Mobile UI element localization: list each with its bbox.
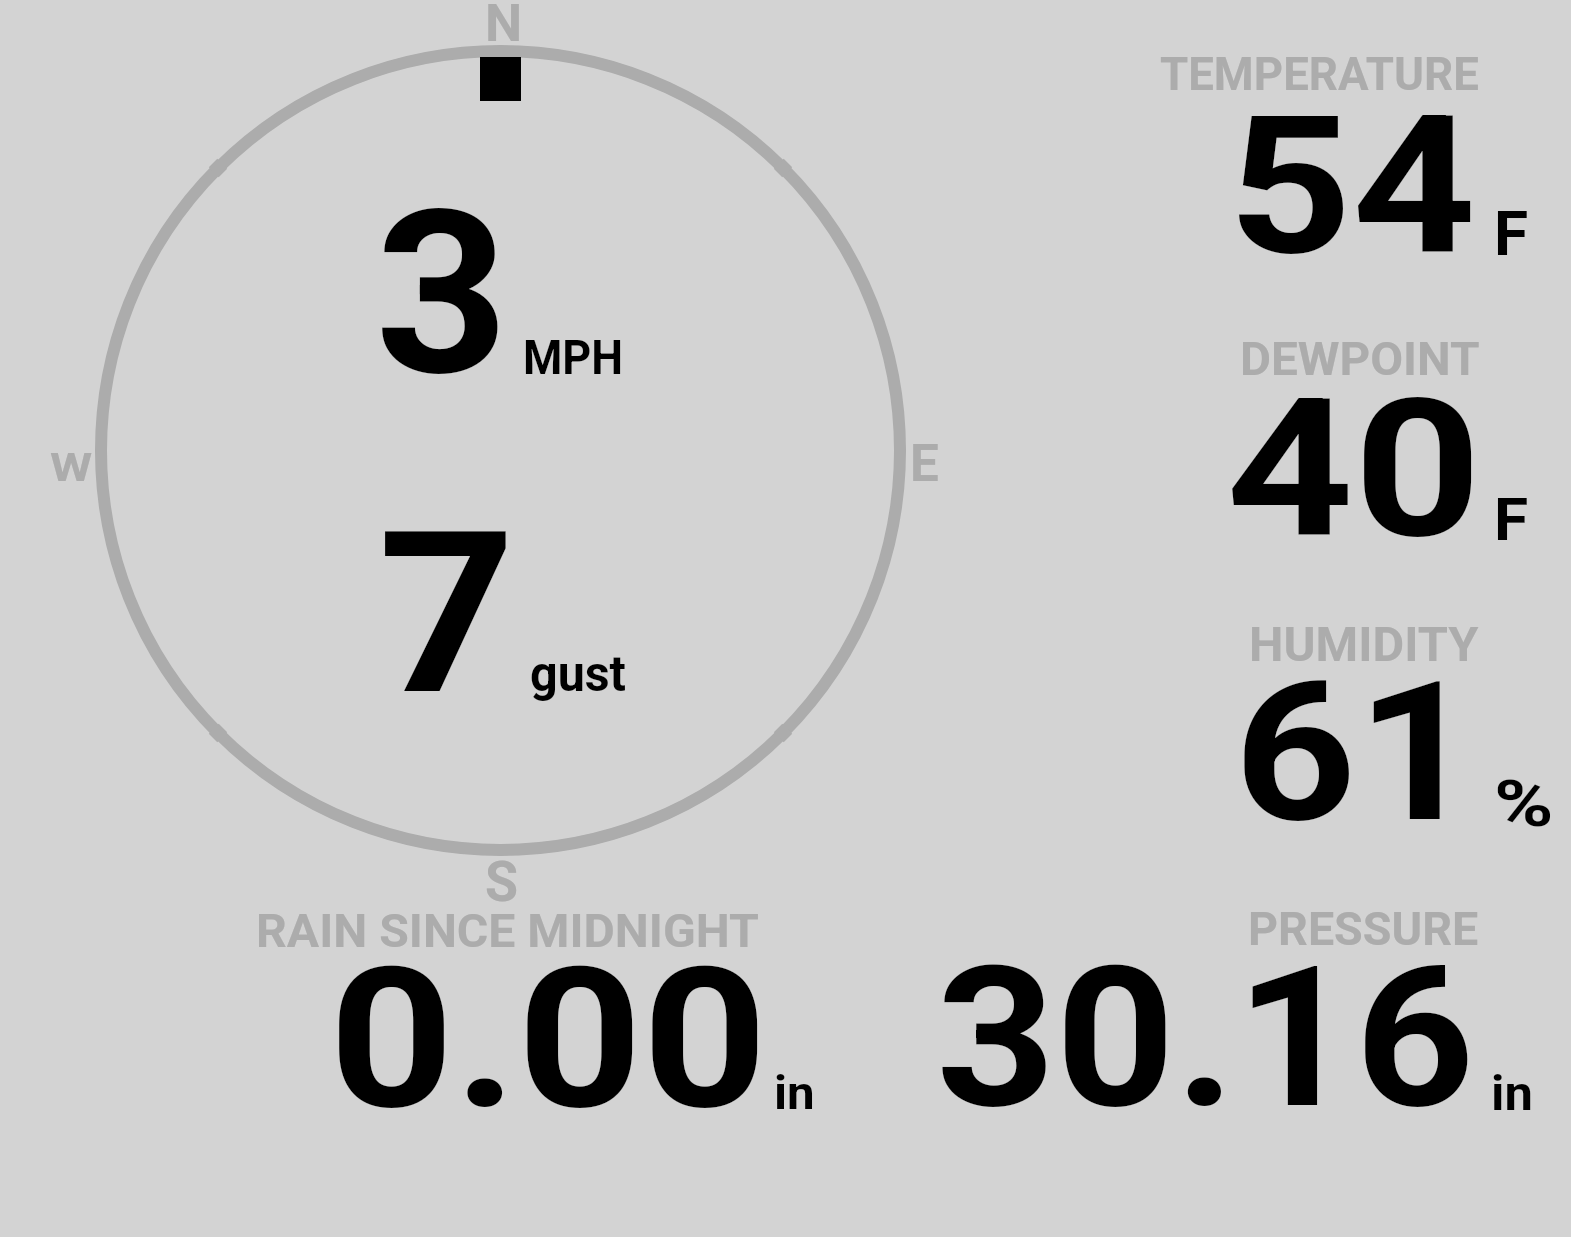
staticText: 0.00	[329, 926, 768, 1154]
staticText: in	[774, 1066, 815, 1120]
staticText: F	[1494, 199, 1529, 270]
staticText: PRESSURE	[1248, 902, 1479, 957]
staticText: 30.16	[936, 925, 1475, 1153]
staticText: W	[50, 445, 93, 491]
button[interactable]: Rain since midnight 0.00 inches	[240, 900, 800, 1125]
staticText: 61	[1234, 640, 1479, 866]
staticText: TEMPERATURE	[1160, 47, 1480, 102]
staticText: S	[485, 850, 518, 914]
staticText: DEWPOINT	[1240, 332, 1480, 387]
staticText: gust	[530, 645, 626, 703]
button[interactable]: Dewpoint 40 degrees Fahrenheit	[1150, 330, 1571, 560]
staticText: 3	[375, 162, 509, 427]
staticText: HUMIDITY	[1249, 617, 1479, 673]
staticText: RAIN SINCE MIDNIGHT	[256, 904, 759, 959]
staticText: in	[1491, 1066, 1534, 1121]
staticText: MPH	[523, 330, 623, 386]
staticText: 54	[1228, 75, 1477, 298]
staticText: E	[910, 433, 939, 493]
staticText: N	[485, 0, 522, 54]
staticText: F	[1494, 485, 1529, 554]
button[interactable]: Humidity 61 percent	[1150, 615, 1571, 845]
staticText: 7	[378, 483, 516, 745]
staticText: %	[1494, 766, 1554, 841]
button[interactable]: Temperature 54 degrees Fahrenheit	[1150, 45, 1571, 275]
button[interactable]: Wind direction compass	[95, 45, 906, 856]
button[interactable]: Pressure 30.16 inches	[910, 900, 1550, 1125]
staticText: 40	[1226, 357, 1482, 582]
